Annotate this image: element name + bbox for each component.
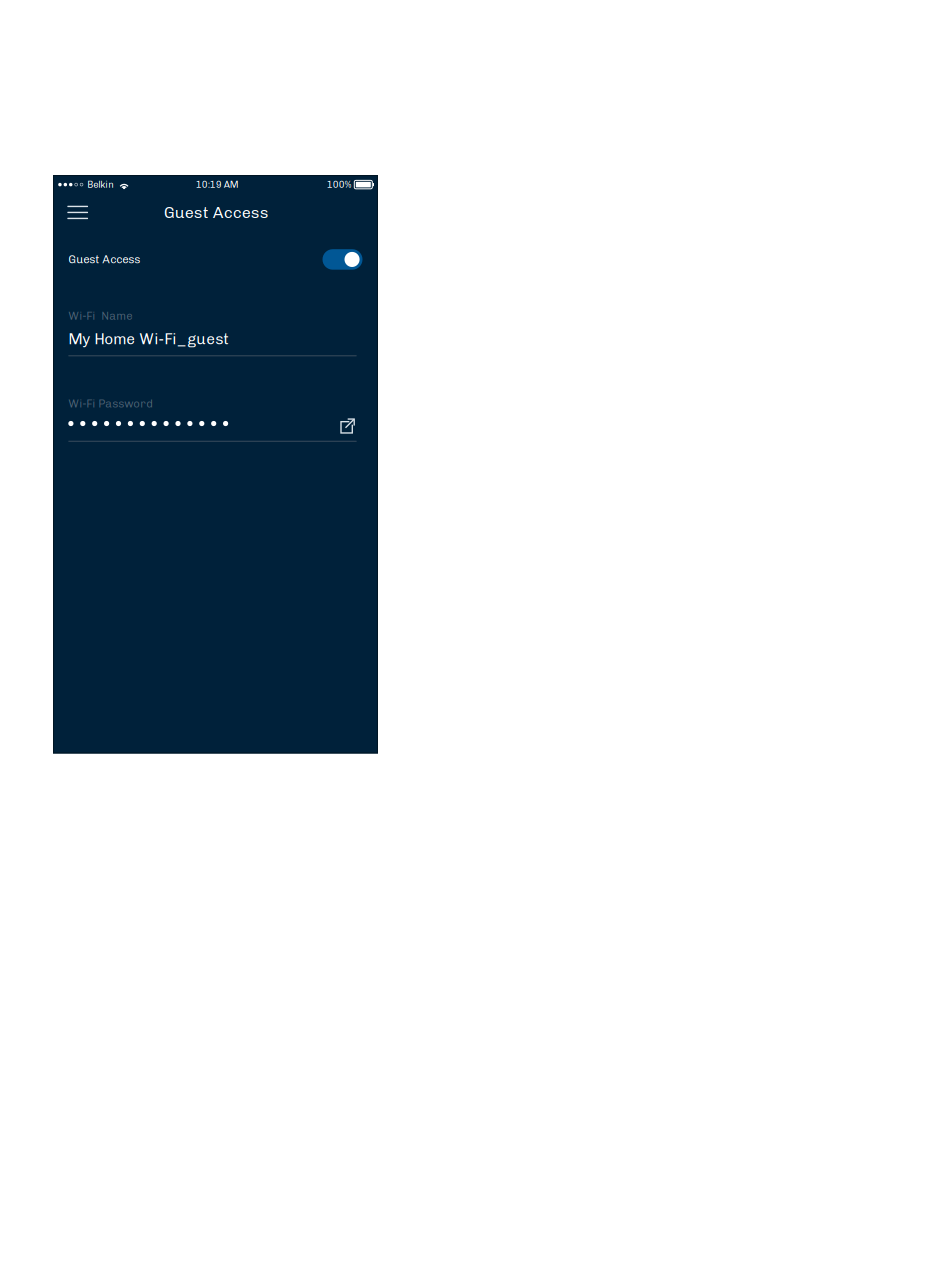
staticText: 10:19 AM xyxy=(196,179,239,190)
staticText: Wi-Fi Name xyxy=(68,309,132,323)
staticText: Guest Access xyxy=(68,253,140,266)
staticText: Guest Access xyxy=(164,203,269,222)
button[interactable]: Menu xyxy=(61,196,95,228)
staticText: Belkin xyxy=(87,179,114,190)
button[interactable]: Share Wi-Fi password xyxy=(333,412,359,434)
button[interactable]: Wi-Fi Name xyxy=(68,309,357,356)
button[interactable]: Wi-Fi Password xyxy=(68,397,359,442)
staticText: My Home Wi-Fi_guest xyxy=(68,330,229,348)
button[interactable]: Guest Access, on xyxy=(322,249,362,270)
staticText: 100% xyxy=(327,179,352,190)
staticText: Wi-Fi Password xyxy=(68,397,153,410)
